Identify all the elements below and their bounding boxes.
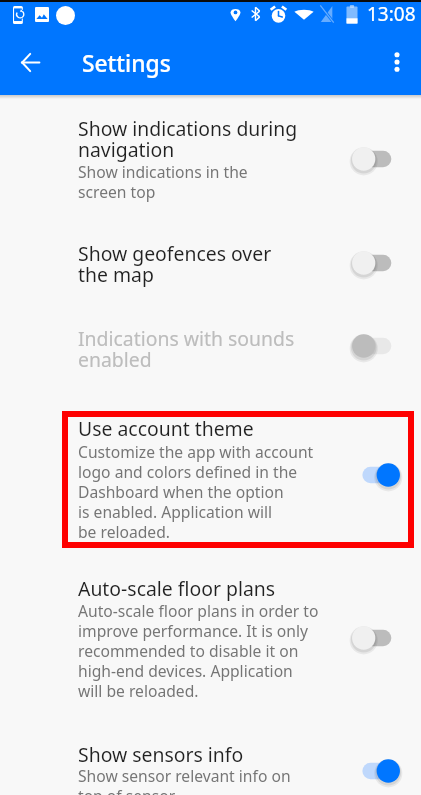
staticText: Use account theme (78, 415, 254, 441)
staticText: Indications with sounds enabled (78, 325, 295, 373)
staticText: Show indications during navigation (78, 115, 298, 163)
staticText: Settings (82, 48, 171, 79)
staticText: Customize the app with account logo and … (78, 441, 314, 542)
staticText: Auto-scale floor plans in order to impro… (78, 600, 319, 701)
button[interactable]: Toggle on (350, 754, 400, 788)
button[interactable] (0, 227, 421, 311)
button[interactable] (0, 558, 421, 718)
button[interactable]: Toggle off (350, 621, 400, 655)
staticText: Show sensors info (78, 741, 244, 767)
button[interactable] (0, 99, 421, 227)
button[interactable] (0, 398, 421, 558)
button[interactable]: Toggle off (350, 329, 400, 363)
staticText: Show sensor relevant info on top of sens… (78, 765, 291, 795)
staticText: Show indications in the screen top (78, 161, 248, 202)
staticText: Show geofences over the map (78, 240, 272, 288)
button[interactable] (0, 311, 421, 395)
staticText: Auto-scale floor plans (78, 575, 276, 601)
button[interactable]: Toggle off (350, 246, 400, 280)
button[interactable] (0, 722, 421, 795)
button[interactable]: Toggle on (350, 458, 400, 492)
staticText: 13:08 (367, 1, 416, 27)
button[interactable]: More options (377, 42, 417, 82)
button[interactable]: Back (10, 42, 51, 83)
button[interactable]: Toggle off (350, 142, 400, 176)
